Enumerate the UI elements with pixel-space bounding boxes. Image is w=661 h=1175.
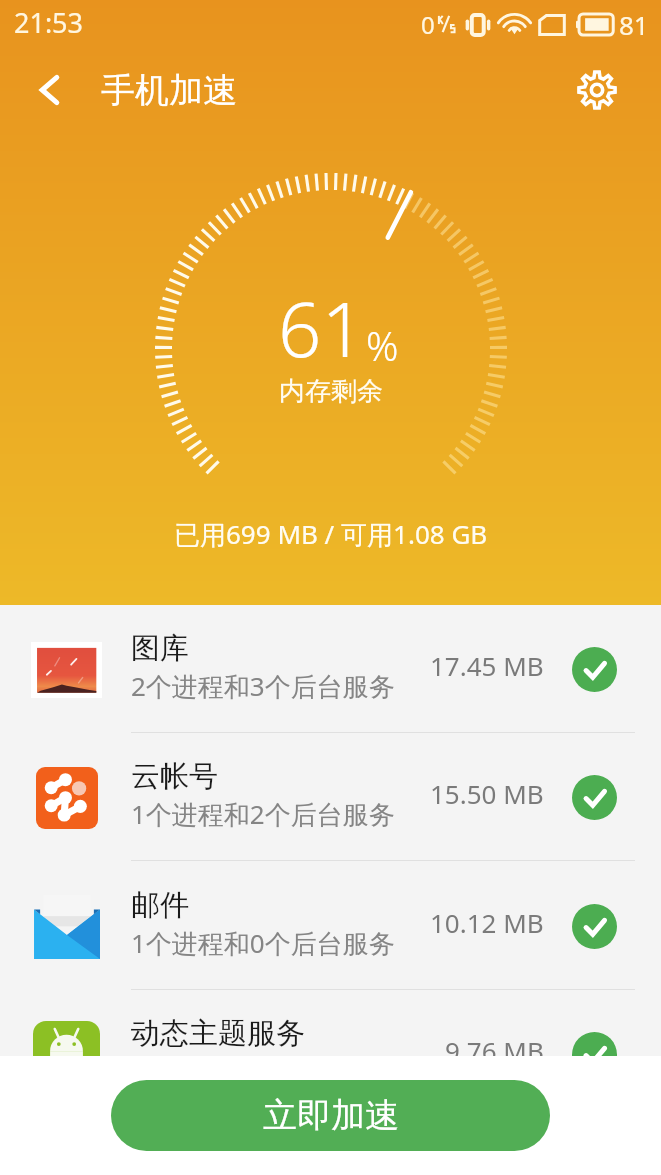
staticText: 1个进程和0个后台服务 xyxy=(131,925,395,961)
staticText: 动态主题服务 xyxy=(131,1015,305,1052)
staticText: 15.50 MB xyxy=(430,776,544,811)
staticText: 17.45 MB xyxy=(430,648,544,683)
staticText: 61 xyxy=(278,276,365,380)
button[interactable]: 邮件 xyxy=(0,862,661,990)
staticText: % xyxy=(366,318,399,372)
staticText: 立即加速 xyxy=(263,1094,399,1137)
staticText: 内存剩余 xyxy=(279,375,383,408)
staticText: 9.76 MB xyxy=(445,1033,544,1056)
staticText: 21:53 xyxy=(14,4,84,41)
staticText: 2个进程和3个后台服务 xyxy=(131,668,395,704)
staticText: 10.12 MB xyxy=(430,905,544,940)
button[interactable]: 立即加速 xyxy=(111,1080,550,1151)
staticText: 81 xyxy=(619,7,649,42)
staticText: 已用699 MB / 可用1.08 GB xyxy=(174,516,488,552)
button[interactable]: Back xyxy=(22,62,78,118)
button[interactable]: 动态主题服务 xyxy=(0,990,661,1056)
button[interactable]: Settings xyxy=(573,66,621,114)
staticText: 手机加速 xyxy=(101,69,237,112)
button[interactable]: 云帐号 xyxy=(0,733,661,861)
staticText: 邮件 xyxy=(131,887,189,924)
staticText: 图库 xyxy=(131,630,189,667)
staticText: 0 xyxy=(421,8,435,41)
button[interactable]: 图库 xyxy=(0,605,661,733)
staticText: 1个进程和2个后台服务 xyxy=(131,796,395,832)
staticText: 云帐号 xyxy=(131,758,218,795)
